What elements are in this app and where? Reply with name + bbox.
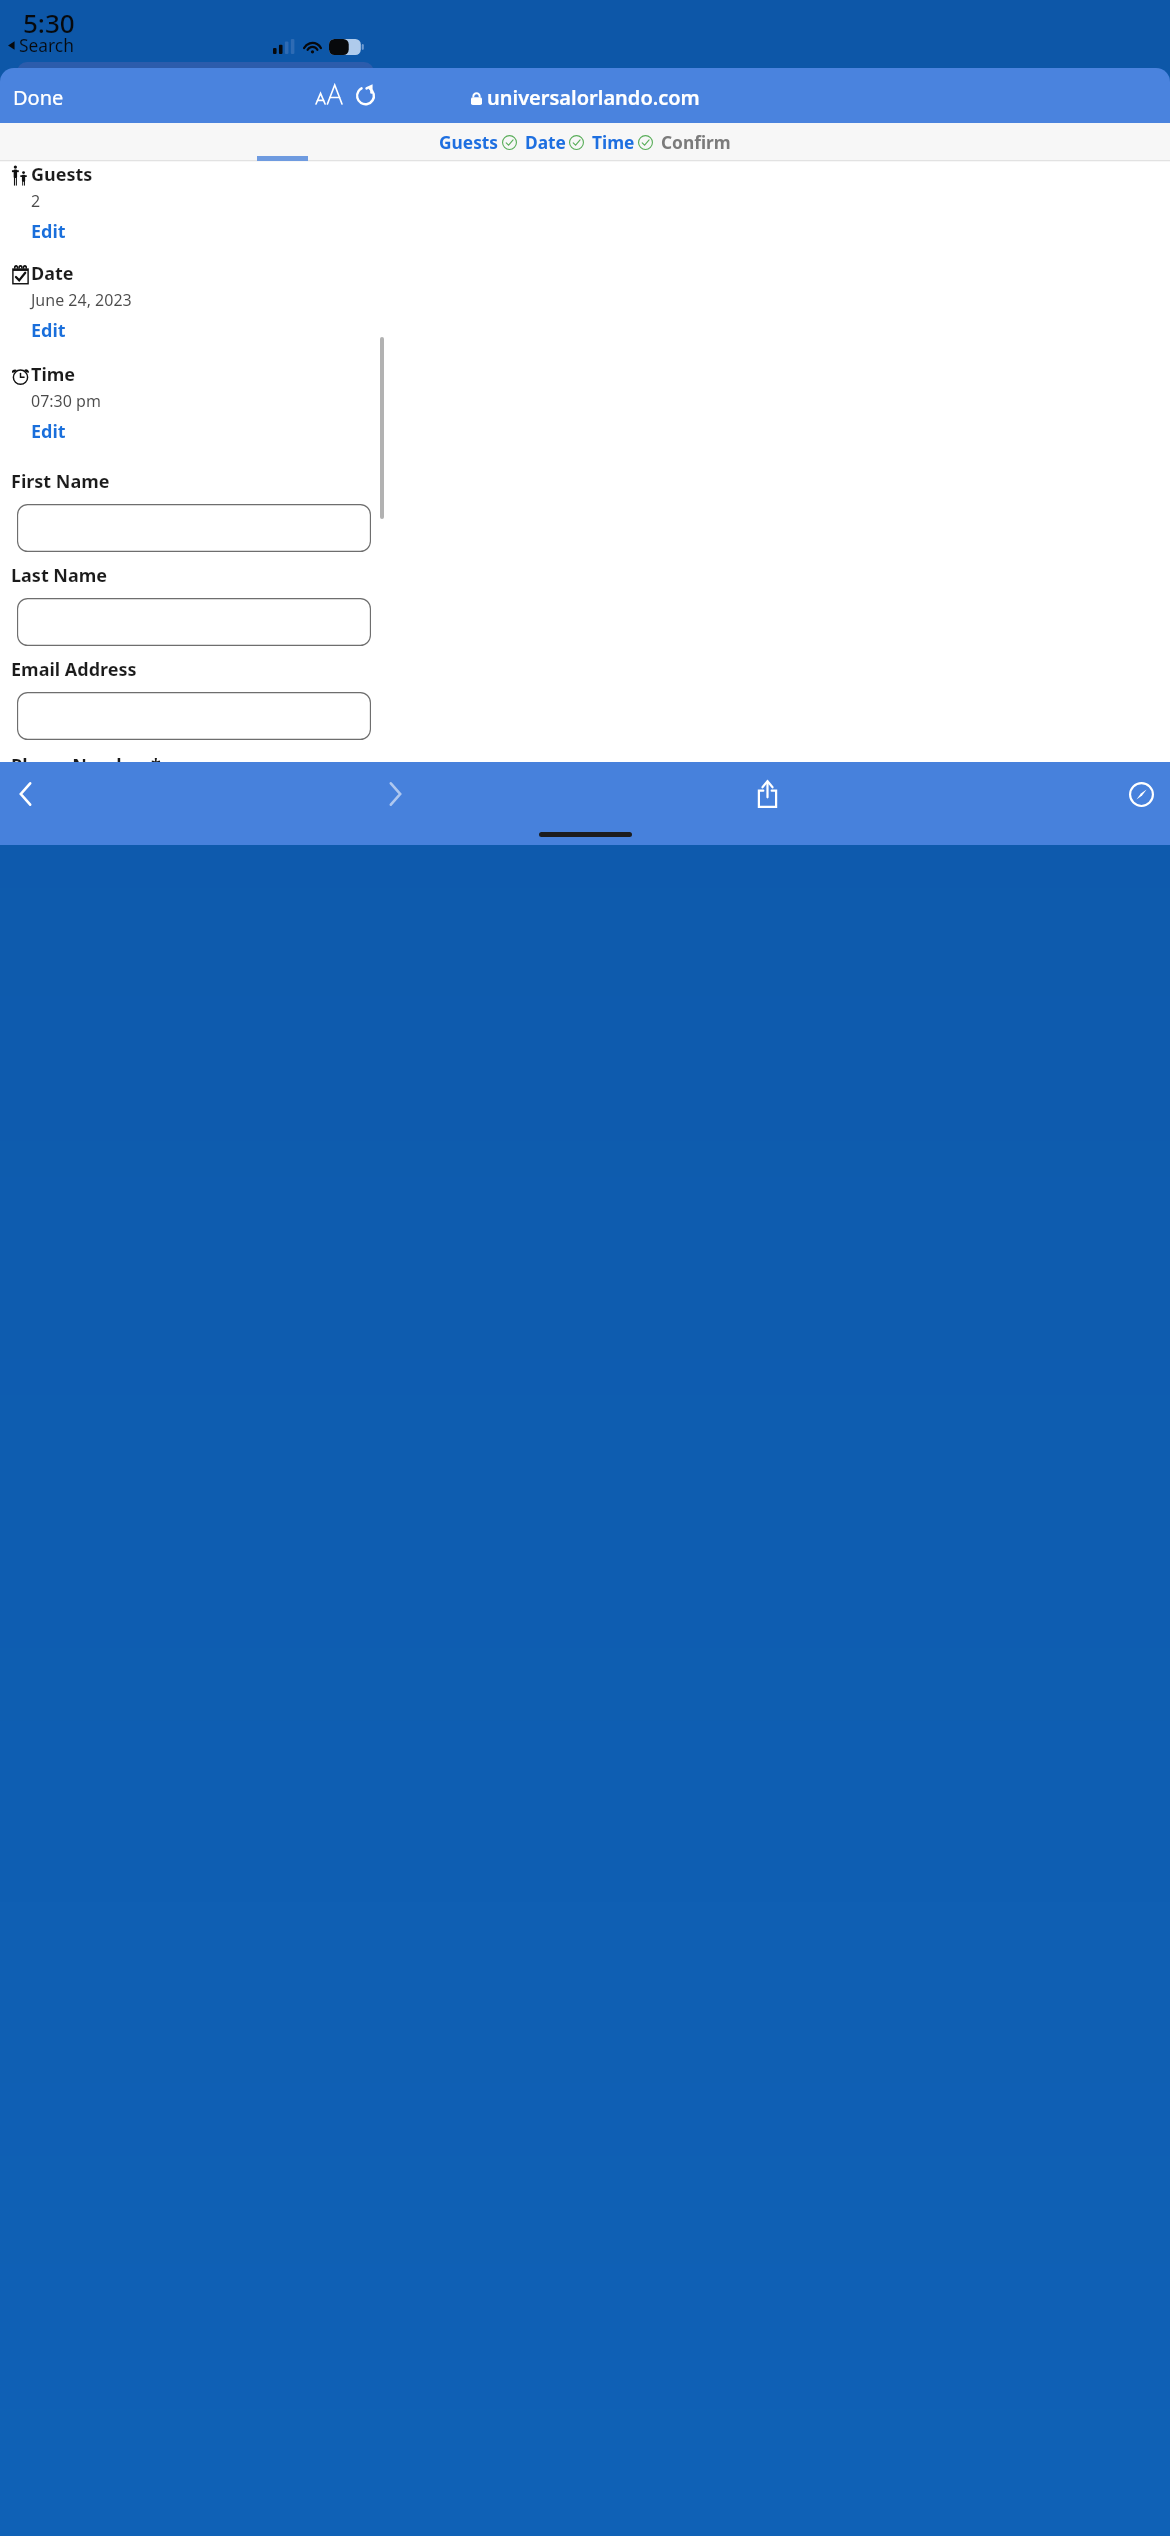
staticText: 07:30 pm	[31, 390, 101, 412]
staticText: Guests	[439, 130, 499, 154]
staticText: Time	[31, 362, 76, 387]
button[interactable]	[17, 504, 371, 552]
button[interactable]: Open in Safari	[1124, 776, 1159, 813]
staticText: 2	[31, 190, 41, 212]
button[interactable]: Edit	[31, 419, 66, 444]
button[interactable]: Forward	[381, 774, 410, 814]
button[interactable]: Done	[8, 81, 69, 114]
staticText: Confirm	[661, 130, 731, 154]
staticText: Time	[592, 130, 635, 154]
staticText: 5:30	[23, 5, 75, 40]
staticText: Search	[19, 33, 74, 57]
button[interactable]: Date	[523, 130, 590, 154]
button[interactable]	[17, 692, 371, 740]
staticText: Done	[13, 84, 64, 111]
staticText: Edit	[31, 419, 66, 444]
button[interactable]: Edit	[31, 318, 66, 343]
staticText: Date	[31, 261, 74, 286]
staticText: Email Address	[11, 657, 137, 682]
button[interactable]: Reload	[353, 80, 378, 107]
staticText: Last Name	[11, 563, 108, 588]
staticText: Date	[525, 130, 566, 154]
staticText: June 24, 2023	[31, 289, 132, 311]
button[interactable]: Guests	[437, 130, 523, 154]
staticText: Guests	[31, 162, 93, 187]
staticText: universalorlando.com	[487, 84, 700, 111]
staticText: First Name	[11, 469, 110, 494]
button[interactable]: Time	[590, 130, 659, 154]
button[interactable]: Edit	[31, 219, 66, 244]
button[interactable]	[17, 598, 371, 646]
button[interactable]: Confirm	[659, 130, 733, 154]
button[interactable]: Text size	[313, 82, 345, 107]
staticText: Phone Number *	[11, 753, 161, 778]
staticText: Edit	[31, 318, 66, 343]
button[interactable]: Back	[11, 774, 40, 814]
staticText: Edit	[31, 219, 66, 244]
button[interactable]: Share	[752, 775, 783, 813]
